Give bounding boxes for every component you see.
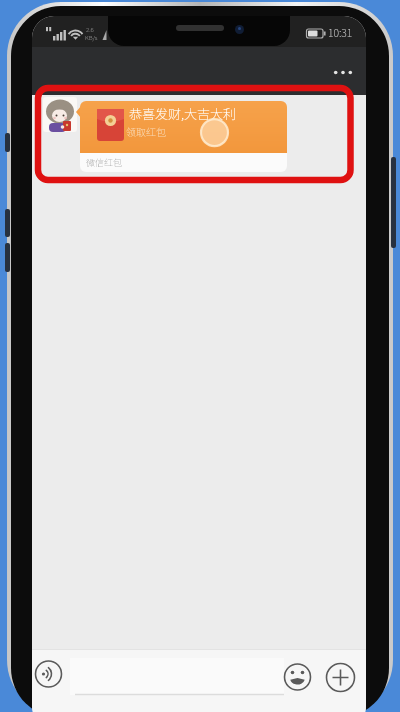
staticText: KB/s xyxy=(85,33,98,42)
button[interactable] xyxy=(35,661,62,688)
staticText: 2.6 xyxy=(86,25,94,34)
staticText: 微信红包 xyxy=(86,156,123,169)
button[interactable] xyxy=(70,658,284,695)
button[interactable] xyxy=(326,663,355,692)
button[interactable] xyxy=(43,97,77,132)
staticText: 恭喜发财,大吉大利 xyxy=(129,104,237,123)
staticText: 领取红包 xyxy=(126,124,166,138)
staticText: 10:31 xyxy=(328,25,353,40)
button[interactable]: 恭喜发财,大吉大利 xyxy=(80,101,287,172)
button[interactable] xyxy=(284,664,311,691)
button[interactable] xyxy=(329,59,363,83)
